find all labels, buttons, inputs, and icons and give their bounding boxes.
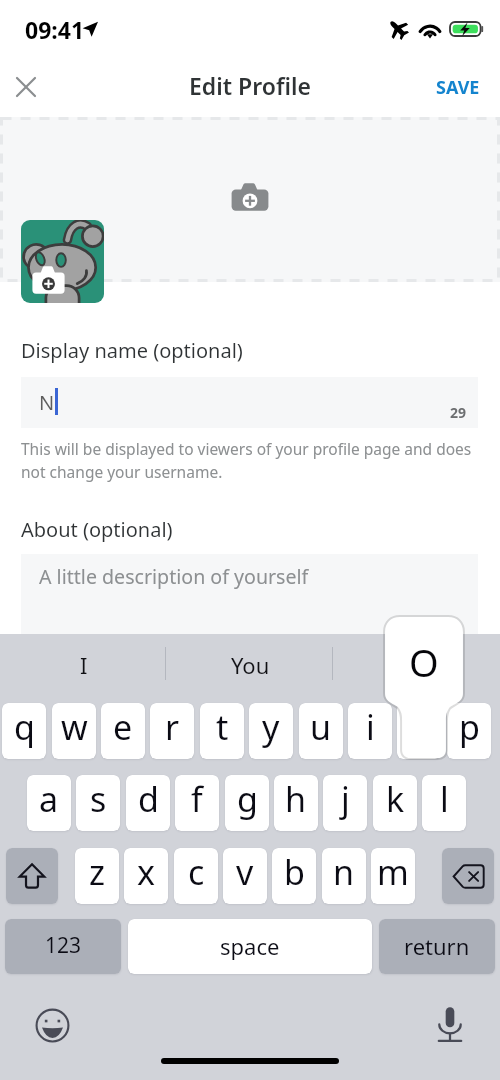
button[interactable]: d	[126, 775, 170, 831]
staticText: k	[386, 776, 405, 822]
button[interactable]: Backspace	[442, 848, 494, 904]
staticText: e	[113, 704, 133, 750]
button[interactable]: s	[76, 775, 120, 831]
staticText: n	[333, 849, 355, 895]
staticText: g	[237, 776, 258, 822]
button[interactable]: x	[124, 848, 168, 904]
button[interactable]: 123	[5, 919, 121, 974]
button[interactable]: b	[272, 848, 316, 904]
button[interactable]: c	[174, 848, 218, 904]
staticText: f	[191, 776, 203, 822]
staticText: v	[236, 849, 254, 895]
button[interactable]: A little description of yourself	[21, 554, 478, 644]
button[interactable]: e	[101, 703, 145, 759]
staticText: return	[404, 931, 470, 961]
button[interactable]: Add banner image	[0, 117, 500, 282]
staticText: SAVE	[436, 75, 480, 100]
staticText: u	[310, 704, 332, 750]
staticText: q	[14, 704, 35, 750]
button[interactable]: f	[175, 775, 219, 831]
staticText: t	[216, 704, 229, 750]
staticText: Edit Profile	[189, 70, 311, 101]
button[interactable]: l	[422, 775, 466, 831]
button[interactable]: a	[27, 775, 71, 831]
staticText: x	[137, 849, 155, 895]
button[interactable]: y	[249, 703, 293, 759]
staticText: O	[409, 636, 439, 688]
button[interactable]: t	[200, 703, 244, 759]
button[interactable]: j	[323, 775, 367, 831]
button[interactable]: N	[21, 377, 478, 428]
staticText: You	[231, 650, 270, 680]
button[interactable]: p	[447, 703, 491, 759]
staticText: p	[459, 704, 480, 750]
staticText: b	[284, 849, 305, 895]
staticText: This will be displayed to viewers of you…	[21, 438, 481, 483]
button[interactable]: z	[75, 848, 119, 904]
staticText: w	[61, 704, 88, 750]
staticText: m	[377, 849, 409, 895]
staticText: a	[39, 776, 59, 822]
button[interactable]: Close	[4, 65, 48, 109]
button[interactable]: space	[128, 919, 372, 974]
staticText: z	[89, 849, 105, 895]
staticText: r	[165, 704, 180, 750]
staticText: 123	[45, 931, 82, 960]
staticText: h	[285, 776, 307, 822]
staticText: l	[440, 776, 449, 822]
staticText: y	[262, 704, 280, 750]
staticText: c	[188, 849, 205, 895]
staticText: s	[90, 776, 107, 822]
staticText: i	[366, 704, 375, 750]
button[interactable]: q	[2, 703, 46, 759]
button[interactable]: u	[299, 703, 343, 759]
staticText: 09:41	[25, 14, 85, 45]
button[interactable]: o	[397, 703, 441, 759]
staticText: I	[80, 650, 88, 680]
button[interactable]: w	[52, 703, 96, 759]
staticText: About (optional)	[21, 516, 173, 543]
staticText: Display name (optional)	[21, 337, 243, 364]
staticText: j	[341, 776, 350, 822]
button[interactable]: Emoji keyboard	[33, 1006, 71, 1044]
staticText: space	[220, 931, 280, 961]
staticText: 29	[450, 403, 467, 422]
button[interactable]: Shift	[6, 848, 58, 904]
button[interactable]: m	[371, 848, 415, 904]
button[interactable]: SAVE	[416, 66, 500, 109]
button[interactable]: g	[225, 775, 269, 831]
button[interactable]: You	[167, 634, 334, 698]
button[interactable]: Dictation	[431, 1006, 469, 1044]
button[interactable]: Change profile avatar	[21, 220, 104, 303]
button[interactable]: h	[274, 775, 318, 831]
button[interactable]: return	[379, 919, 495, 974]
button[interactable]: r	[150, 703, 194, 759]
button[interactable]: n	[322, 848, 366, 904]
staticText: A little description of yourself	[39, 563, 309, 590]
button[interactable]: i	[348, 703, 392, 759]
button[interactable]: v	[223, 848, 267, 904]
button[interactable]: k	[373, 775, 417, 831]
staticText: d	[138, 776, 159, 822]
button[interactable]: I	[0, 634, 167, 698]
staticText: N	[39, 389, 55, 416]
